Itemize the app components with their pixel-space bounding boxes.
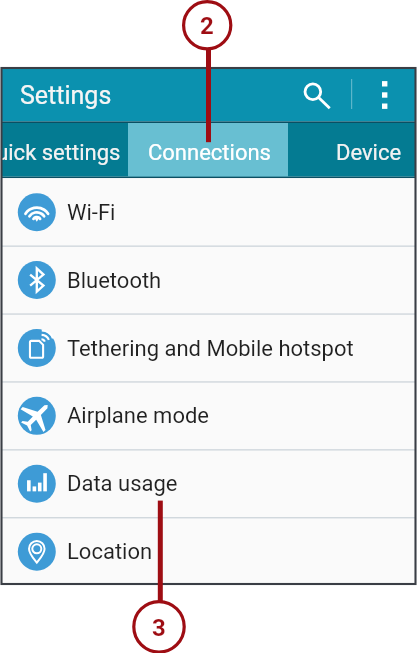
- button[interactable]: Connections: [128, 123, 288, 177]
- staticText: Tethering and Mobile hotspot: [67, 336, 354, 362]
- button[interactable]: Device: [288, 123, 417, 177]
- button[interactable]: [2, 314, 415, 382]
- staticText: Bluetooth: [67, 268, 162, 294]
- button[interactable]: [2, 518, 415, 586]
- button[interactable]: [2, 178, 415, 246]
- staticText: Device: [336, 140, 402, 166]
- staticText: Wi-Fi: [67, 200, 116, 226]
- button[interactable]: Quick settings: [0, 123, 128, 177]
- button[interactable]: [2, 246, 415, 314]
- button[interactable]: [2, 450, 415, 518]
- button[interactable]: [2, 382, 415, 450]
- staticText: Connections: [148, 140, 271, 166]
- staticText: Quick settings: [0, 140, 121, 166]
- button[interactable]: Search: [292, 70, 340, 120]
- staticText: Settings: [20, 81, 112, 110]
- staticText: Data usage: [67, 471, 178, 497]
- staticText: 2: [200, 12, 214, 40]
- staticText: Airplane mode: [67, 403, 210, 429]
- button[interactable]: More options: [362, 70, 408, 120]
- staticText: 3: [152, 614, 166, 642]
- staticText: Location: [67, 539, 153, 565]
